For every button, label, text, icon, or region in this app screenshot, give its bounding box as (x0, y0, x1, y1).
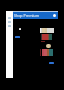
button[interactable]: Navigation item (6, 16, 13, 20)
button[interactable]: Shop Premium (13, 12, 58, 19)
button[interactable]: Account (53, 14, 56, 17)
button[interactable]: Navigation item (6, 20, 13, 24)
button[interactable]: Navigation item (6, 24, 13, 28)
button[interactable] (15, 36, 20, 38)
button[interactable]: See more (49, 62, 54, 64)
staticText: Shop Premium (14, 13, 39, 18)
